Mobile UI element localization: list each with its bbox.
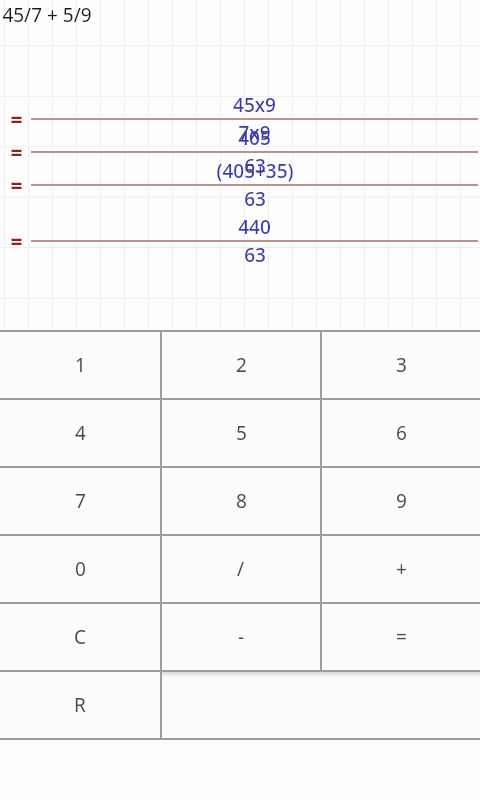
staticText: R	[74, 692, 86, 718]
staticText: 8	[236, 488, 247, 514]
button[interactable]: -	[162, 604, 320, 670]
button[interactable]: 9	[322, 468, 480, 534]
staticText: 45/7 + 5/9	[2, 2, 92, 28]
button[interactable]: 4	[0, 400, 160, 466]
staticText: +	[396, 556, 407, 582]
staticText: 7	[75, 488, 86, 514]
button[interactable]: 6	[322, 400, 480, 466]
staticText: 4	[75, 420, 86, 446]
staticText: 1	[75, 352, 86, 378]
staticText: 5	[236, 420, 247, 446]
button[interactable]: +	[322, 536, 480, 602]
button[interactable]: =	[322, 604, 480, 670]
button[interactable]: R	[0, 672, 160, 738]
staticText: -	[238, 624, 245, 650]
button[interactable]: /	[162, 536, 320, 602]
button[interactable]: 2	[162, 332, 320, 398]
staticText: 9	[396, 488, 407, 514]
staticText: 45x9	[233, 92, 276, 118]
staticText: 405	[238, 125, 271, 151]
button[interactable]: 0	[0, 536, 160, 602]
staticText: =	[10, 105, 23, 134]
staticText: 2	[236, 352, 247, 378]
button[interactable]: C	[0, 604, 160, 670]
staticText: 3	[396, 352, 407, 378]
staticText: 0	[75, 556, 86, 582]
staticText: (405+35)	[216, 158, 294, 184]
staticText: 63	[244, 242, 266, 268]
staticText: 7x9	[238, 120, 271, 146]
staticText: 63	[244, 153, 266, 179]
button[interactable]: 5	[162, 400, 320, 466]
staticText: C	[74, 624, 87, 650]
staticText: =	[10, 138, 23, 167]
button[interactable]: 1	[0, 332, 160, 398]
staticText: =	[10, 227, 23, 256]
staticText: /	[237, 556, 245, 582]
button[interactable]: 3	[322, 332, 480, 398]
staticText: =	[396, 624, 407, 650]
button[interactable]: 8	[162, 468, 320, 534]
button[interactable]: Result display	[162, 672, 480, 738]
staticText: =	[10, 171, 23, 200]
staticText: 63	[244, 186, 266, 212]
staticText: 6	[396, 420, 407, 446]
staticText: 440	[238, 214, 271, 240]
button[interactable]: 7	[0, 468, 160, 534]
